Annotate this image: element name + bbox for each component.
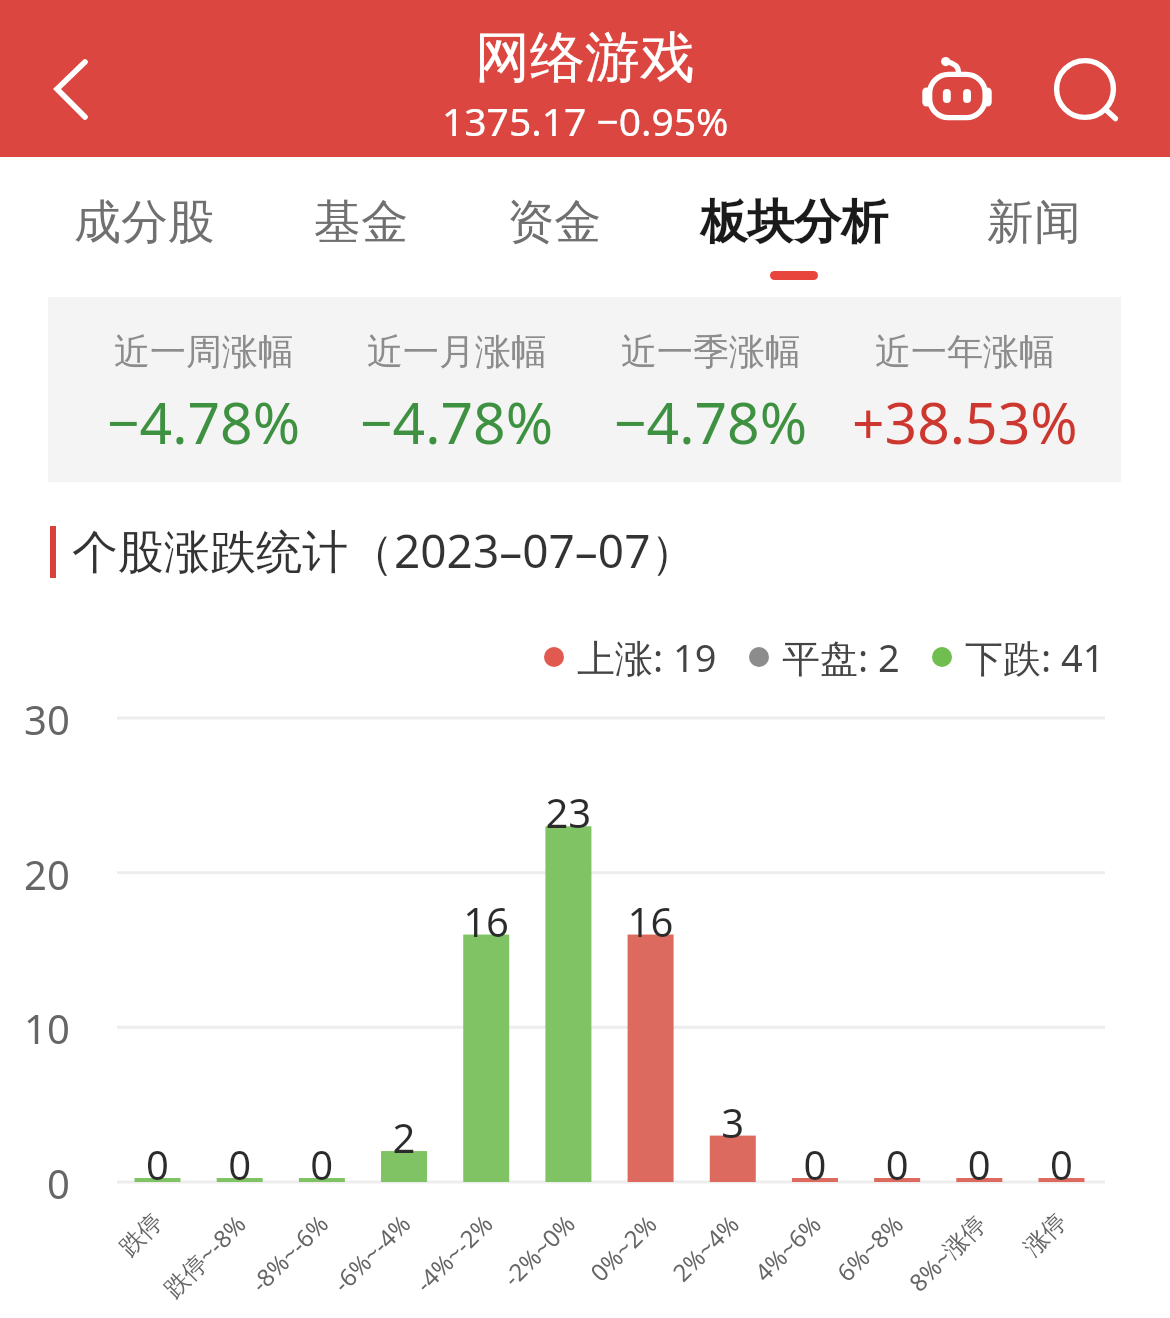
- staticText: 近一年涨幅: [875, 329, 1055, 374]
- button[interactable]: Search: [1038, 45, 1132, 133]
- staticText: 下跌: 41: [965, 631, 1105, 683]
- staticText: 成分股: [74, 193, 215, 252]
- staticText: 平盘: 2: [782, 631, 900, 683]
- staticText: 近一月涨幅: [367, 329, 547, 374]
- staticText: 网络游戏: [475, 23, 695, 92]
- button[interactable]: 资金: [507, 193, 601, 297]
- staticText: 基金: [314, 193, 408, 252]
- staticText: 近一季涨幅: [621, 329, 801, 374]
- staticText: 上涨: 19: [577, 631, 717, 683]
- button[interactable]: 基金: [314, 193, 408, 297]
- staticText: 近一周涨幅: [114, 329, 294, 374]
- staticText: −4.78%: [360, 383, 554, 461]
- button[interactable]: 新闻: [987, 193, 1081, 297]
- staticText: 1375.17 −0.95%: [442, 94, 729, 147]
- button[interactable]: AI assistant: [910, 45, 1004, 133]
- button[interactable]: 板块分析: [700, 193, 888, 297]
- staticText: 板块分析: [700, 193, 888, 252]
- button[interactable]: 成分股: [74, 193, 215, 297]
- staticText: 资金: [507, 193, 601, 252]
- staticText: +38.53%: [852, 383, 1078, 461]
- button[interactable]: Back: [0, 0, 130, 157]
- staticText: 个股涨跌统计（2023–07–07）: [72, 519, 697, 582]
- staticText: −4.78%: [614, 383, 808, 461]
- staticText: −4.78%: [107, 383, 301, 461]
- staticText: 新闻: [987, 193, 1081, 252]
